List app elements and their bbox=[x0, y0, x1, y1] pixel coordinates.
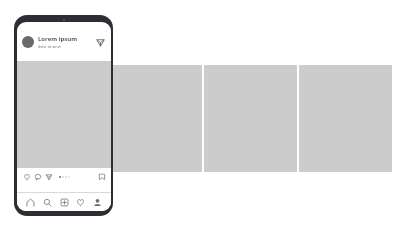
button[interactable]: Comment bbox=[32, 171, 43, 182]
button[interactable] bbox=[108, 65, 202, 172]
button[interactable]: Like bbox=[21, 171, 32, 182]
button[interactable]: Add post bbox=[58, 196, 71, 209]
button[interactable]: Search bbox=[41, 196, 54, 209]
button[interactable]: Send bbox=[43, 171, 54, 182]
button[interactable]: Share bbox=[94, 36, 106, 48]
button[interactable]: Home bbox=[24, 196, 37, 209]
button[interactable] bbox=[22, 36, 34, 48]
staticText: Lorem ipsum bbox=[38, 35, 78, 43]
button[interactable]: Activity bbox=[74, 196, 87, 209]
staticText: dolor sit amet bbox=[38, 44, 61, 49]
button[interactable]: Profile bbox=[91, 196, 104, 209]
button[interactable]: Save bbox=[96, 171, 107, 182]
